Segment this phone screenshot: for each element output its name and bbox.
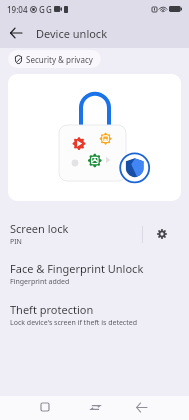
staticText: Fingerprint added [10, 277, 70, 287]
button[interactable]: Home [79, 396, 112, 420]
staticText: G [46, 4, 52, 15]
staticText: Device unlock [36, 26, 108, 41]
button[interactable]: Recent apps [29, 396, 61, 420]
button[interactable]: Back [0, 18, 31, 48]
button[interactable]: Theft protection [0, 299, 189, 331]
staticText: 19:04 [7, 4, 28, 15]
button[interactable]: Face & Fingerprint Unlock [0, 258, 189, 290]
staticText: Screen lock [10, 221, 69, 236]
button[interactable]: Screen lock settings [143, 215, 181, 253]
staticText: Theft protection [10, 302, 94, 317]
staticText: Security & privacy [26, 54, 93, 65]
button[interactable]: Back [125, 396, 158, 420]
button[interactable]: Screen lock [0, 215, 189, 253]
staticText: Face & Fingerprint Unlock [10, 261, 144, 276]
staticText: PIN [10, 237, 22, 247]
staticText: G [39, 4, 45, 15]
button[interactable]: Security & privacy [8, 50, 101, 68]
staticText: Lock device's screen if theft is detecte… [10, 318, 138, 328]
